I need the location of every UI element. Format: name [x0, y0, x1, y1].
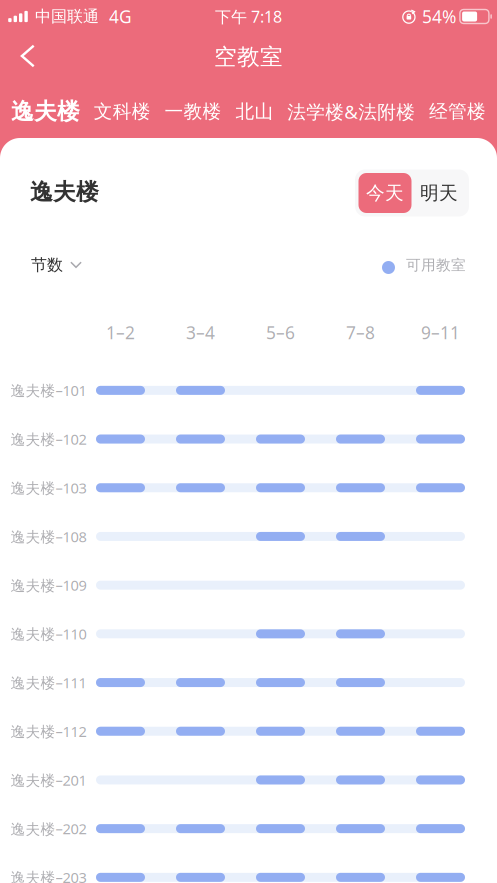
- staticText: 逸夫楼: [11, 98, 80, 125]
- staticText: 节数: [31, 255, 63, 275]
- staticText: 中国联通: [35, 7, 99, 26]
- button[interactable]: 逸夫楼–201: [0, 756, 497, 804]
- button[interactable]: Back: [0, 33, 56, 85]
- button[interactable]: 北山: [235, 100, 273, 123]
- staticText: 逸夫楼: [30, 178, 99, 206]
- staticText: 3–4: [186, 321, 215, 344]
- staticText: 空教室: [214, 43, 283, 71]
- staticText: 一教楼: [165, 100, 222, 123]
- button[interactable]: 经管楼: [429, 100, 486, 123]
- staticText: 北山: [235, 100, 273, 123]
- button[interactable]: 逸夫楼: [11, 98, 80, 125]
- staticText: 4G: [109, 5, 132, 28]
- button[interactable]: 节数: [31, 255, 82, 275]
- staticText: 经管楼: [429, 100, 486, 123]
- staticText: 可用教室: [406, 256, 466, 274]
- button[interactable]: 逸夫楼–103: [0, 463, 497, 512]
- staticText: 逸夫楼–103: [10, 478, 86, 497]
- staticText: 逸夫楼–109: [10, 575, 86, 595]
- button[interactable]: 逸夫楼–110: [0, 609, 497, 658]
- staticText: 逸夫楼–101: [10, 381, 86, 400]
- button[interactable]: 逸夫楼–202: [0, 804, 497, 853]
- button[interactable]: 法学楼&法附楼: [287, 99, 415, 124]
- button[interactable]: 逸夫楼–112: [0, 707, 497, 756]
- button[interactable]: 逸夫楼–108: [0, 512, 497, 561]
- button[interactable]: 一教楼: [165, 100, 222, 123]
- staticText: 逸夫楼–102: [10, 429, 86, 449]
- staticText: 1–2: [106, 321, 135, 344]
- staticText: 54%: [422, 5, 456, 28]
- staticText: 逸夫楼–112: [10, 721, 86, 741]
- staticText: 今天: [366, 181, 404, 204]
- staticText: 逸夫楼–201: [10, 770, 86, 790]
- staticText: 下午 7:18: [215, 6, 282, 27]
- staticText: 逸夫楼–202: [10, 819, 86, 838]
- staticText: 逸夫楼–110: [10, 624, 86, 644]
- button[interactable]: 今天: [358, 173, 411, 213]
- button[interactable]: 逸夫楼–203: [0, 853, 497, 883]
- staticText: 7–8: [346, 321, 375, 344]
- staticText: 法学楼&法附楼: [287, 99, 415, 124]
- staticText: 文科楼: [94, 100, 151, 123]
- staticText: 逸夫楼–111: [10, 673, 86, 692]
- button[interactable]: 逸夫楼–111: [0, 658, 497, 707]
- button[interactable]: 逸夫楼–109: [0, 561, 497, 609]
- button[interactable]: 文科楼: [94, 100, 151, 123]
- button[interactable]: 明天: [412, 173, 465, 213]
- staticText: 5–6: [266, 321, 295, 344]
- button[interactable]: 逸夫楼–102: [0, 415, 497, 463]
- button[interactable]: 逸夫楼–101: [0, 366, 497, 415]
- staticText: 逸夫楼–108: [10, 527, 86, 546]
- staticText: 9–11: [421, 321, 460, 344]
- staticText: 明天: [420, 181, 458, 204]
- staticText: 逸夫楼–203: [10, 868, 86, 883]
